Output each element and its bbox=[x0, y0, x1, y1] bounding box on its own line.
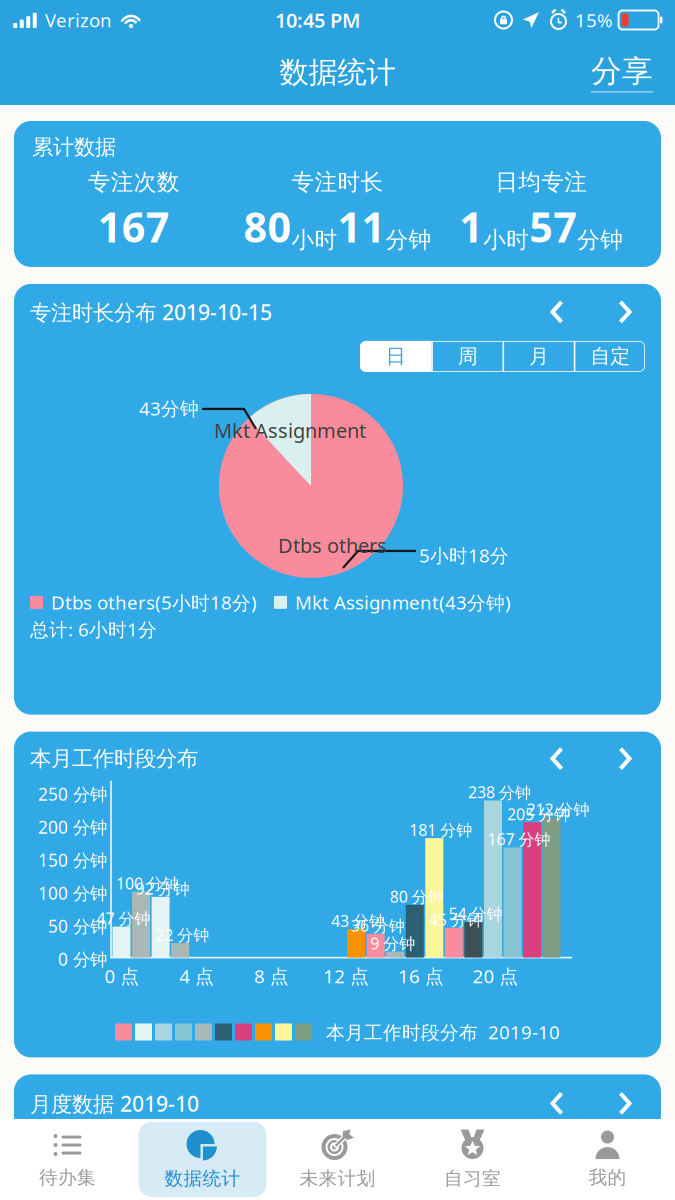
button[interactable]: 自定 bbox=[574, 341, 645, 372]
button[interactable]: 数据统计 bbox=[135, 1122, 270, 1197]
staticText: 自习室 bbox=[444, 1167, 501, 1190]
button[interactable]: 月 bbox=[502, 341, 574, 372]
staticText: 自定 bbox=[590, 344, 630, 369]
staticText: 9 分钟 bbox=[370, 933, 415, 954]
button[interactable]: 自习室 bbox=[405, 1122, 540, 1197]
button[interactable]: 分享 bbox=[591, 52, 653, 93]
staticText: 20 点 bbox=[473, 964, 519, 988]
staticText: Verizon bbox=[45, 8, 112, 32]
staticText: 分钟 bbox=[385, 226, 431, 254]
staticText: Mkt Assignment(43分钟) bbox=[295, 590, 511, 615]
button[interactable]: 周 bbox=[431, 341, 502, 372]
staticText: 1 bbox=[459, 199, 483, 254]
staticText: 200 分钟 bbox=[38, 816, 107, 839]
staticText: 待办集 bbox=[39, 1166, 96, 1189]
staticText: 0 分钟 bbox=[58, 948, 107, 971]
staticText: 数据统计 bbox=[164, 1167, 240, 1190]
staticText: 167 分钟 bbox=[487, 828, 550, 850]
staticText: 数据统计 bbox=[279, 54, 395, 90]
staticText: 22 分钟 bbox=[155, 924, 209, 945]
staticText: 专注次数 bbox=[88, 168, 180, 196]
staticText: 本月工作时段分布 2019-10 bbox=[326, 1020, 560, 1044]
button[interactable]: Previous bbox=[537, 1088, 577, 1118]
staticText: Dtbs others(5小时18分) bbox=[51, 590, 257, 615]
staticText: 92 分钟 bbox=[136, 878, 190, 899]
staticText: 15% bbox=[575, 8, 613, 32]
staticText: 80 bbox=[243, 199, 291, 254]
staticText: Mkt Assignment bbox=[214, 417, 366, 443]
button[interactable]: 待办集 bbox=[0, 1122, 135, 1197]
staticText: 月 bbox=[529, 344, 549, 369]
staticText: 12 点 bbox=[323, 964, 369, 988]
staticText: 36 分钟 bbox=[351, 915, 405, 936]
staticText: 43分钟 bbox=[139, 396, 199, 421]
button[interactable]: Next bbox=[605, 297, 645, 327]
staticText: 167 bbox=[98, 199, 170, 254]
staticText: 未来计划 bbox=[299, 1167, 375, 1190]
button[interactable]: Next bbox=[605, 744, 645, 774]
staticText: 月度数据 2019-10 bbox=[30, 1089, 199, 1117]
staticText: Dtbs others bbox=[278, 532, 387, 558]
staticText: 总计: 6小时1分 bbox=[30, 617, 157, 642]
staticText: 100 分钟 bbox=[38, 882, 107, 905]
staticText: 小时 bbox=[483, 226, 529, 254]
staticText: 250 分钟 bbox=[38, 783, 107, 806]
staticText: 小时 bbox=[291, 226, 337, 254]
staticText: 50 分钟 bbox=[48, 915, 107, 938]
staticText: 我的 bbox=[588, 1166, 626, 1189]
staticText: 54 分钟 bbox=[448, 903, 502, 924]
staticText: 5小时18分 bbox=[419, 543, 509, 568]
staticText: 181 分钟 bbox=[409, 819, 472, 840]
button[interactable]: 我的 bbox=[540, 1122, 675, 1197]
staticText: 238 分钟 bbox=[468, 781, 531, 803]
staticText: 专注时长 bbox=[291, 168, 383, 196]
button[interactable]: Next bbox=[605, 1088, 645, 1118]
staticText: 8 点 bbox=[254, 964, 289, 988]
button[interactable]: Previous bbox=[537, 297, 577, 327]
staticText: 43 分钟 bbox=[331, 910, 385, 931]
staticText: 周 bbox=[458, 344, 478, 369]
staticText: 分钟 bbox=[577, 226, 623, 254]
staticText: 11 bbox=[337, 199, 385, 254]
staticText: 0 点 bbox=[104, 964, 139, 988]
staticText: 累计数据 bbox=[32, 134, 116, 160]
staticText: 100 分钟 bbox=[116, 873, 179, 894]
button[interactable]: 未来计划 bbox=[270, 1122, 405, 1197]
staticText: 212 分钟 bbox=[527, 799, 590, 820]
staticText: 80 分钟 bbox=[390, 886, 444, 907]
staticText: 57 bbox=[529, 199, 577, 254]
staticText: 专注时长分布 2019-10-15 bbox=[30, 298, 272, 326]
button[interactable]: 日 bbox=[360, 341, 431, 372]
staticText: 日均专注 bbox=[495, 168, 587, 196]
staticText: 16 点 bbox=[398, 964, 444, 988]
staticText: 47 分钟 bbox=[96, 908, 150, 929]
button[interactable]: Previous bbox=[537, 744, 577, 774]
staticText: 分享 bbox=[591, 52, 653, 90]
staticText: 150 分钟 bbox=[38, 849, 107, 872]
staticText: 日 bbox=[386, 344, 406, 369]
staticText: 4 点 bbox=[179, 964, 214, 988]
staticText: 本月工作时段分布 bbox=[30, 745, 198, 772]
staticText: 205 分钟 bbox=[507, 803, 570, 824]
staticText: 45 分钟 bbox=[429, 909, 483, 930]
staticText: 10:45 PM bbox=[275, 7, 361, 33]
